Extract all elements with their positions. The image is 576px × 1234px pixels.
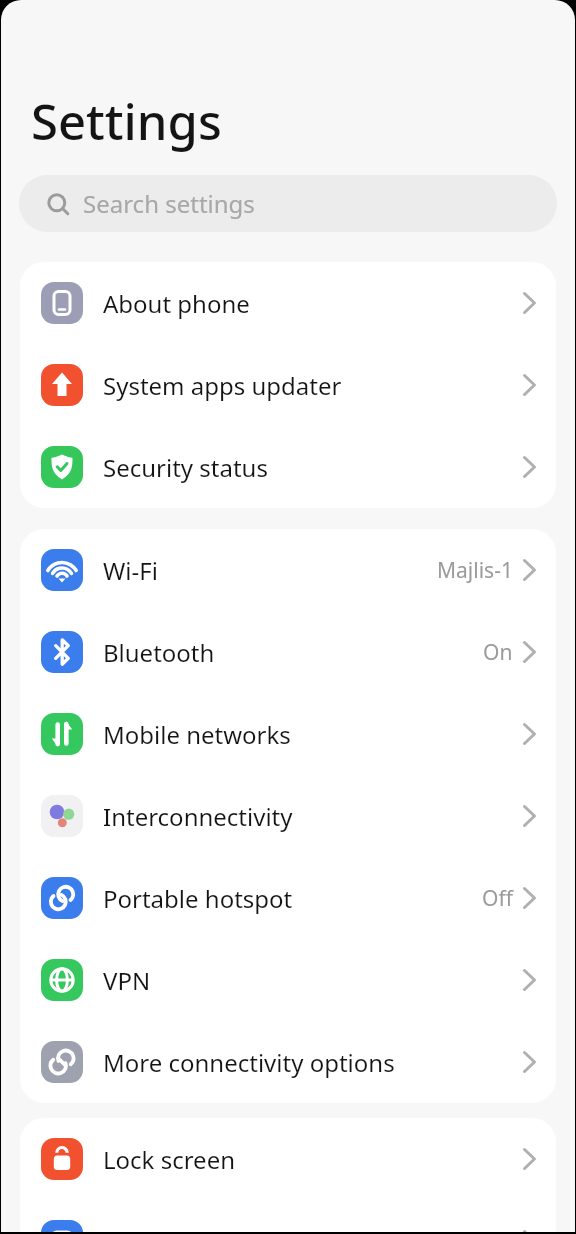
staticText: Lock screen	[103, 1143, 236, 1176]
staticText: Search settings	[83, 187, 255, 220]
button[interactable]: Search settings	[19, 175, 557, 232]
staticText: Interconnectivity	[103, 800, 293, 833]
staticText: Off	[482, 884, 513, 913]
button[interactable]: About phone	[20, 262, 556, 344]
button[interactable]: Portable hotspot	[20, 857, 556, 939]
staticText: More connectivity options	[103, 1046, 395, 1079]
button[interactable]: Notifications & status bar	[20, 1200, 556, 1232]
button[interactable]: Mobile networks	[20, 693, 556, 775]
button[interactable]: Interconnectivity	[20, 775, 556, 857]
staticText: On	[483, 638, 513, 667]
button[interactable]: Bluetooth	[20, 611, 556, 693]
staticText: Bluetooth	[103, 636, 215, 669]
button[interactable]: Lock screen	[20, 1118, 556, 1200]
staticText: Security status	[103, 451, 268, 484]
staticText: Settings	[31, 88, 222, 155]
staticText: About phone	[103, 287, 250, 320]
button[interactable]: System apps updater	[20, 344, 556, 426]
staticText: VPN	[103, 964, 151, 997]
button[interactable]: VPN	[20, 939, 556, 1021]
staticText: Majlis-1	[437, 556, 513, 585]
button[interactable]: More connectivity options	[20, 1021, 556, 1103]
staticText: System apps updater	[103, 369, 342, 402]
staticText: Portable hotspot	[103, 882, 293, 915]
button[interactable]: Security status	[20, 426, 556, 508]
staticText: Wi-Fi	[103, 554, 158, 587]
staticText: Mobile networks	[103, 718, 291, 751]
button[interactable]: Wi-Fi	[20, 529, 556, 611]
